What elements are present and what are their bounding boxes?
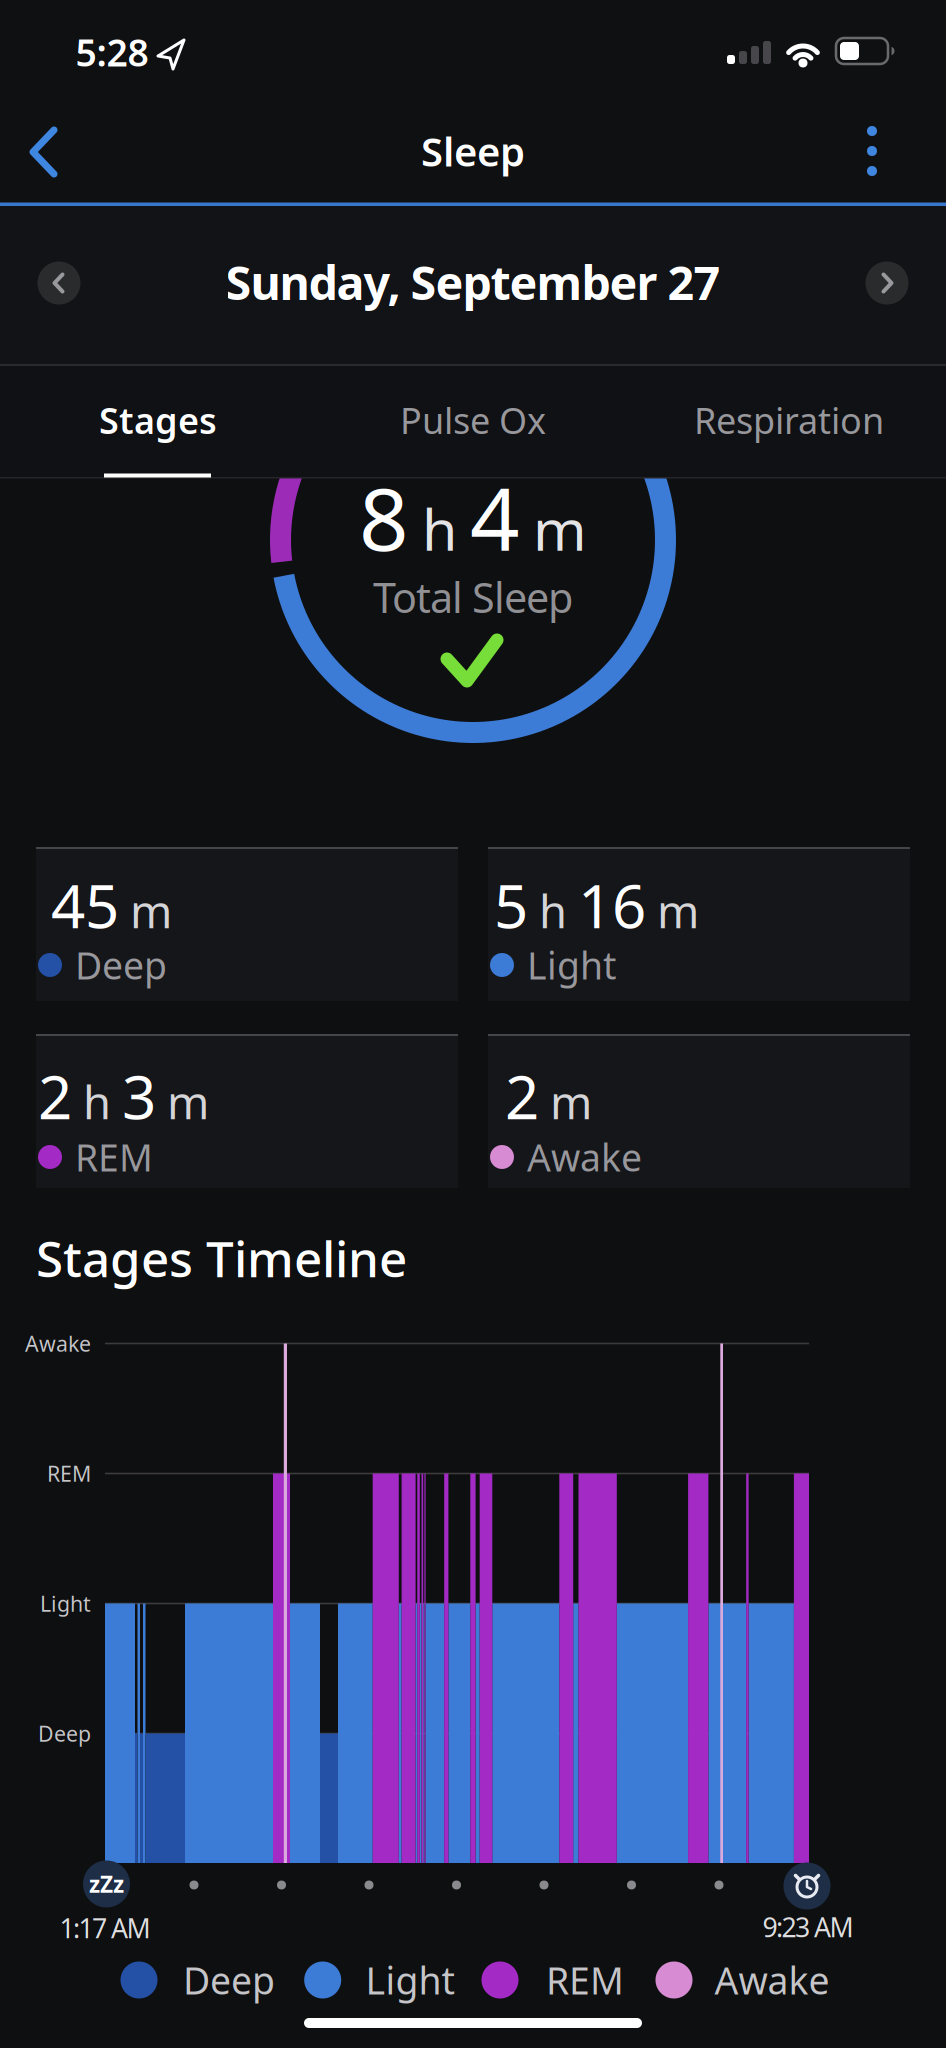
staticText: Sleep — [421, 124, 525, 177]
staticText: 9:23 AM — [762, 1909, 853, 1945]
staticText: Awake — [25, 1329, 91, 1358]
staticText: m — [550, 1072, 592, 1132]
staticText: 8 — [359, 459, 409, 575]
staticText: Light — [40, 1589, 91, 1618]
staticText: 1:17 AM — [59, 1910, 150, 1946]
staticText: 45 — [51, 865, 119, 945]
staticText: Sunday, September 27 — [225, 251, 720, 313]
staticText: h — [83, 1072, 111, 1132]
staticText: Deep — [75, 940, 167, 990]
staticText: m — [167, 1072, 209, 1132]
staticText: Deep — [38, 1719, 91, 1748]
staticText: Deep — [183, 1955, 275, 2005]
staticText: 5 — [494, 865, 528, 945]
button[interactable]: Respiration — [639, 364, 939, 475]
staticText: Stages Timeline — [36, 1225, 407, 1291]
staticText: 2 — [38, 1056, 72, 1136]
staticText: m — [657, 881, 699, 941]
button[interactable]: Back — [10, 119, 80, 185]
staticText: Light — [527, 940, 616, 990]
staticText: Light — [365, 1955, 454, 2005]
staticText: m — [533, 490, 587, 566]
staticText: 16 — [578, 865, 646, 945]
staticText: Pulse Ox — [400, 396, 546, 444]
staticText: 4 — [470, 459, 520, 575]
staticText: Stages — [99, 396, 217, 444]
staticText: 2 — [505, 1056, 539, 1136]
button[interactable]: More options — [839, 118, 905, 184]
staticText: h — [539, 881, 567, 941]
staticText: Total Sleep — [373, 570, 573, 624]
staticText: Awake — [714, 1955, 829, 2005]
staticText: zZz — [89, 1869, 124, 1899]
staticText: m — [130, 881, 172, 941]
button[interactable]: Pulse Ox — [323, 364, 623, 475]
staticText: 3 — [122, 1056, 156, 1136]
staticText: h — [422, 490, 457, 566]
staticText: REM — [47, 1459, 91, 1488]
staticText: Awake — [527, 1132, 642, 1182]
staticText: REM — [546, 1955, 624, 2005]
button[interactable]: Previous day — [37, 261, 80, 304]
button[interactable]: Next day — [865, 261, 908, 304]
staticText: Respiration — [694, 396, 884, 444]
staticText: 5:28 — [75, 27, 148, 77]
staticText: REM — [75, 1132, 153, 1182]
button[interactable]: Stages — [8, 364, 308, 475]
